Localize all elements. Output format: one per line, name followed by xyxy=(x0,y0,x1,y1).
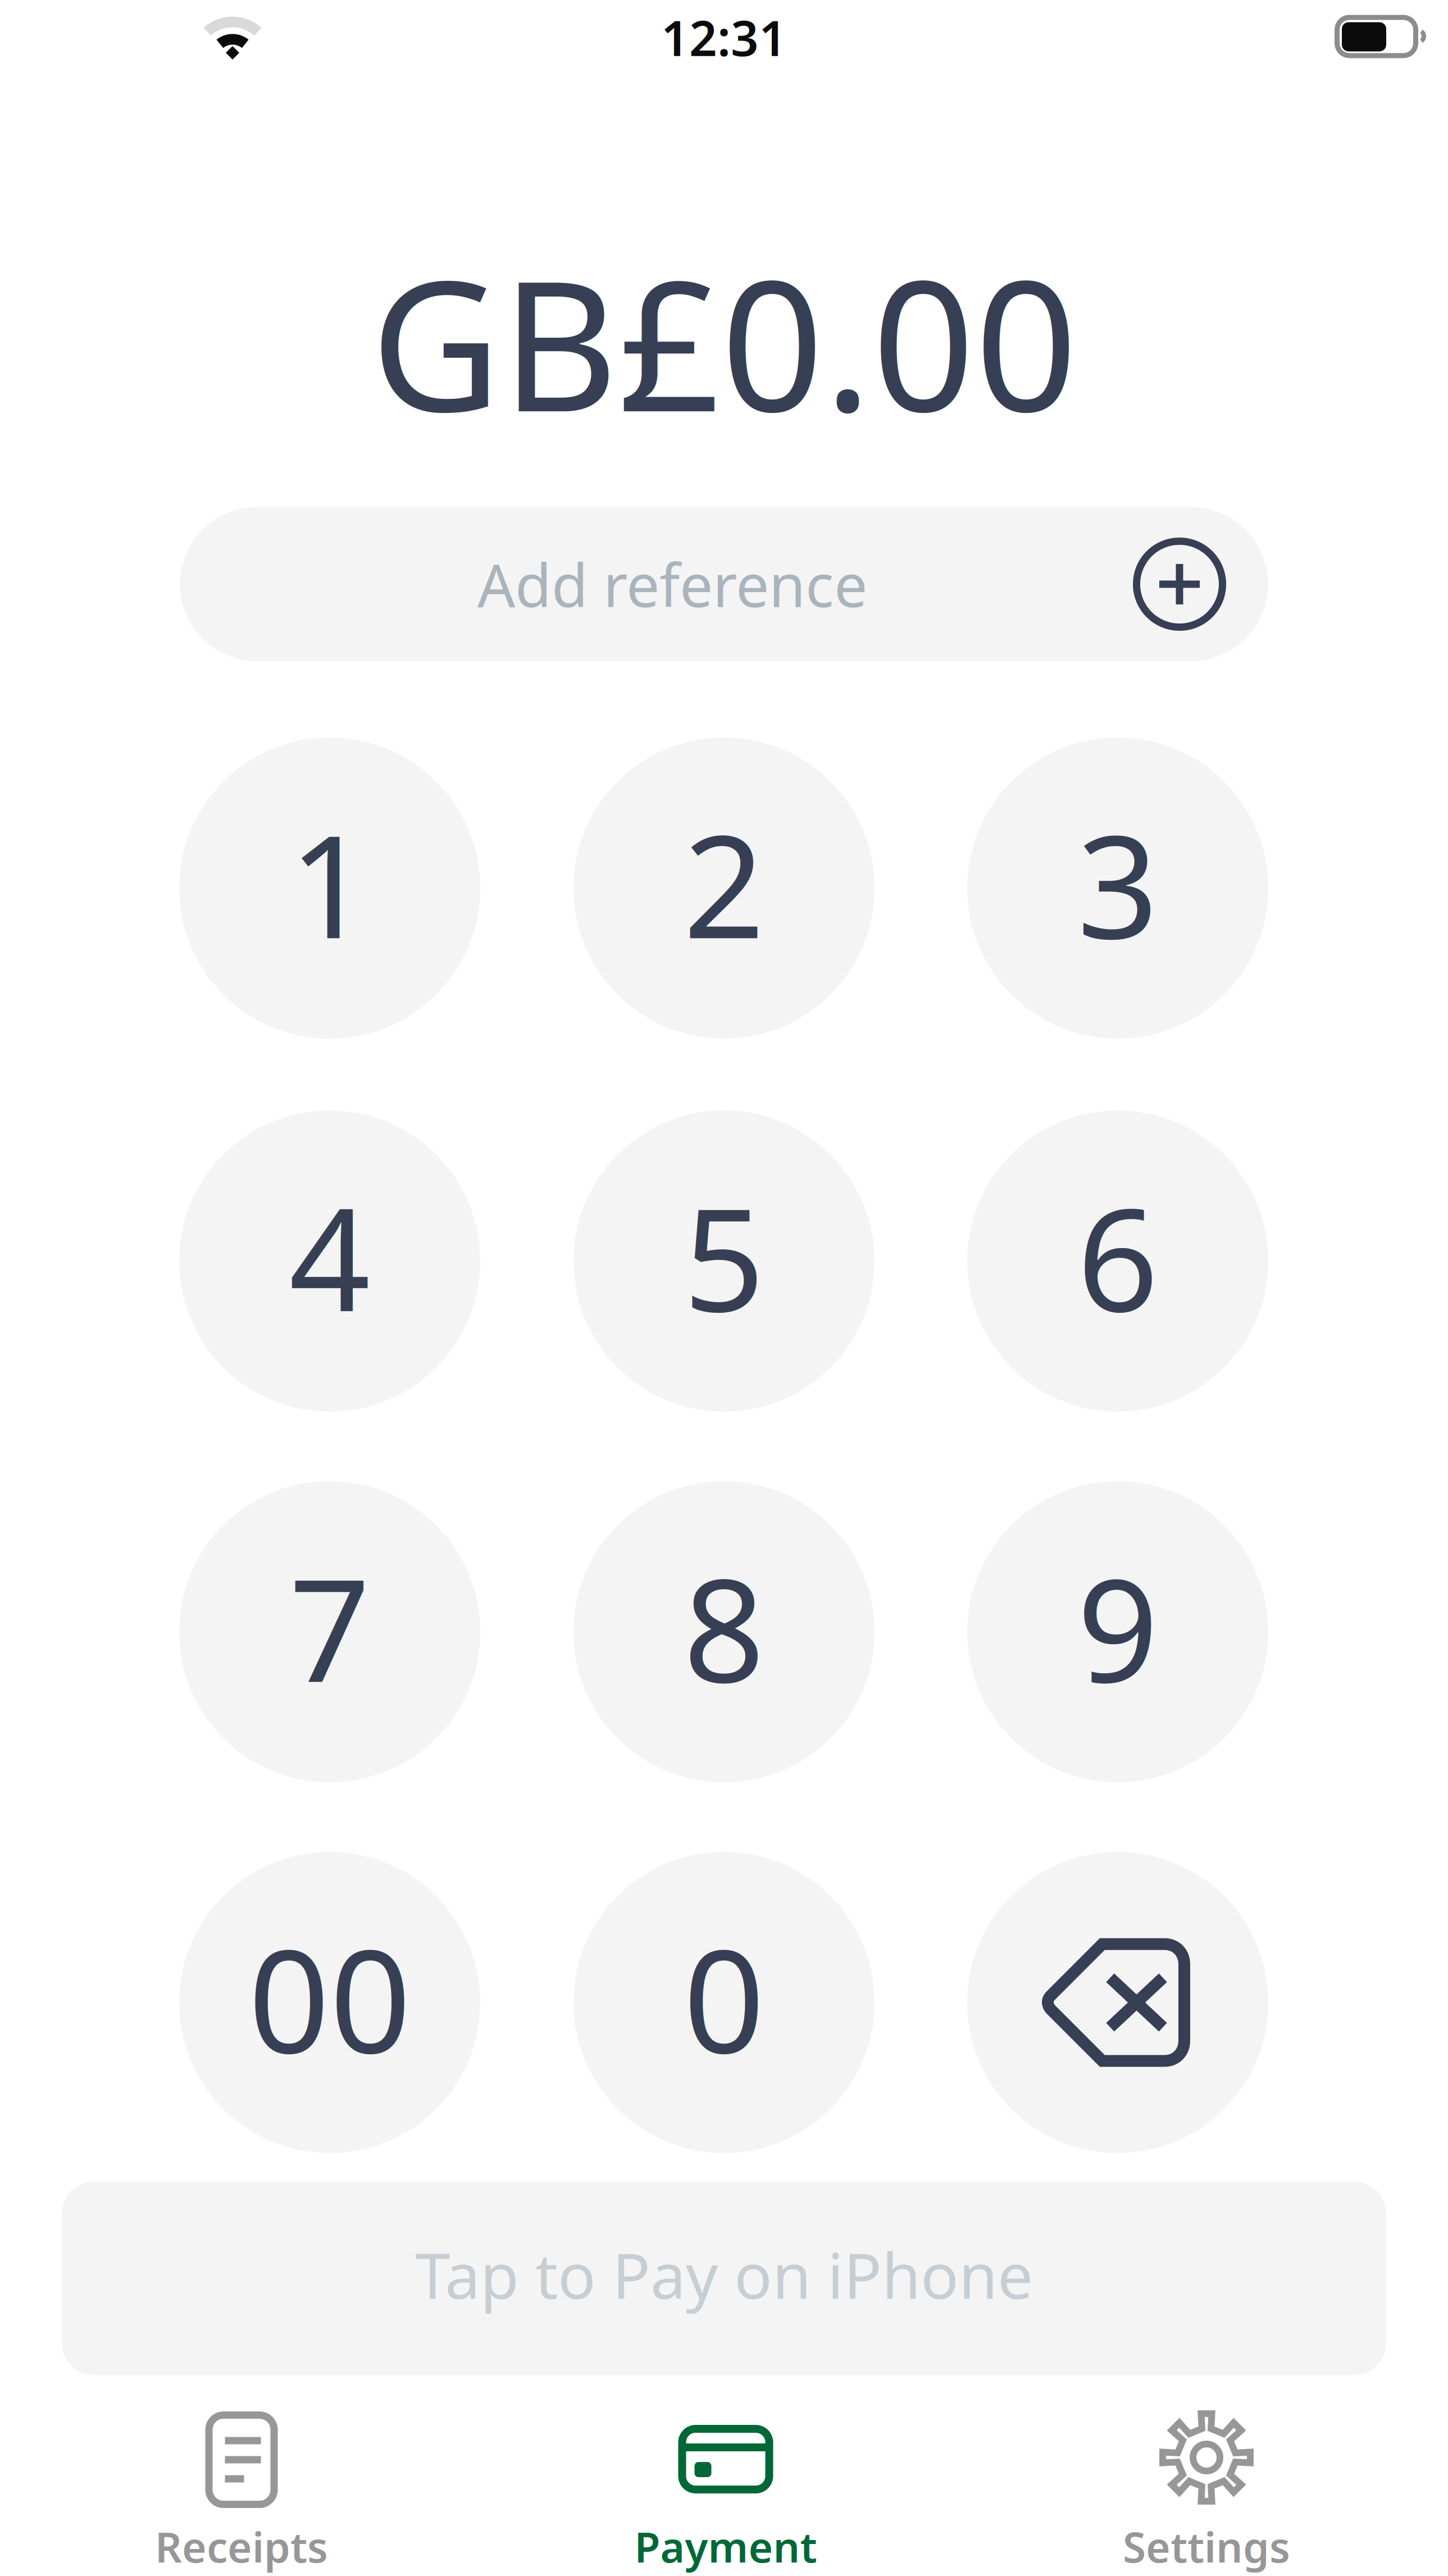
button[interactable]: 7 xyxy=(179,1481,480,1782)
staticText: GB£0.00 xyxy=(370,222,1078,461)
staticText: 4 xyxy=(289,1162,370,1350)
staticText: Receipts xyxy=(155,2518,328,2574)
staticText: Payment xyxy=(634,2518,817,2574)
staticText: 5 xyxy=(683,1162,765,1350)
button[interactable]: Receipts xyxy=(0,2401,483,2576)
button[interactable]: 1 xyxy=(179,738,480,1039)
staticText: 1 xyxy=(289,789,370,977)
staticText: 7 xyxy=(289,1532,370,1721)
button[interactable]: 0 xyxy=(573,1852,875,2153)
staticText: Settings xyxy=(1123,2518,1290,2574)
staticText: 2 xyxy=(683,789,765,977)
button[interactable]: 6 xyxy=(967,1110,1268,1412)
staticText: 9 xyxy=(1077,1532,1158,1721)
button[interactable] xyxy=(967,1852,1268,2153)
staticText: 0 xyxy=(683,1903,765,2092)
button[interactable]: 8 xyxy=(573,1481,875,1782)
staticText: 00 xyxy=(248,1903,411,2092)
button[interactable]: 00 xyxy=(179,1852,480,2153)
staticText: 12:31 xyxy=(661,5,787,69)
button[interactable]: Payment xyxy=(484,2401,967,2576)
button[interactable]: Tap to Pay on iPhone xyxy=(62,2182,1386,2375)
button[interactable]: Settings xyxy=(965,2401,1448,2576)
staticText: 8 xyxy=(683,1532,765,1721)
button[interactable]: 9 xyxy=(967,1481,1268,1782)
button[interactable]: 5 xyxy=(573,1110,875,1412)
staticText: 3 xyxy=(1077,789,1158,977)
staticText: 6 xyxy=(1077,1162,1158,1350)
button[interactable]: Add reference xyxy=(180,507,1268,661)
staticText: Tap to Pay on iPhone xyxy=(415,2233,1033,2316)
button[interactable]: 2 xyxy=(573,738,875,1039)
button[interactable]: Wi‑Fi xyxy=(200,8,265,66)
button[interactable]: Battery xyxy=(1335,15,1424,58)
button[interactable]: 4 xyxy=(179,1110,480,1412)
staticText: Add reference xyxy=(477,545,867,623)
button[interactable]: 3 xyxy=(967,738,1268,1039)
